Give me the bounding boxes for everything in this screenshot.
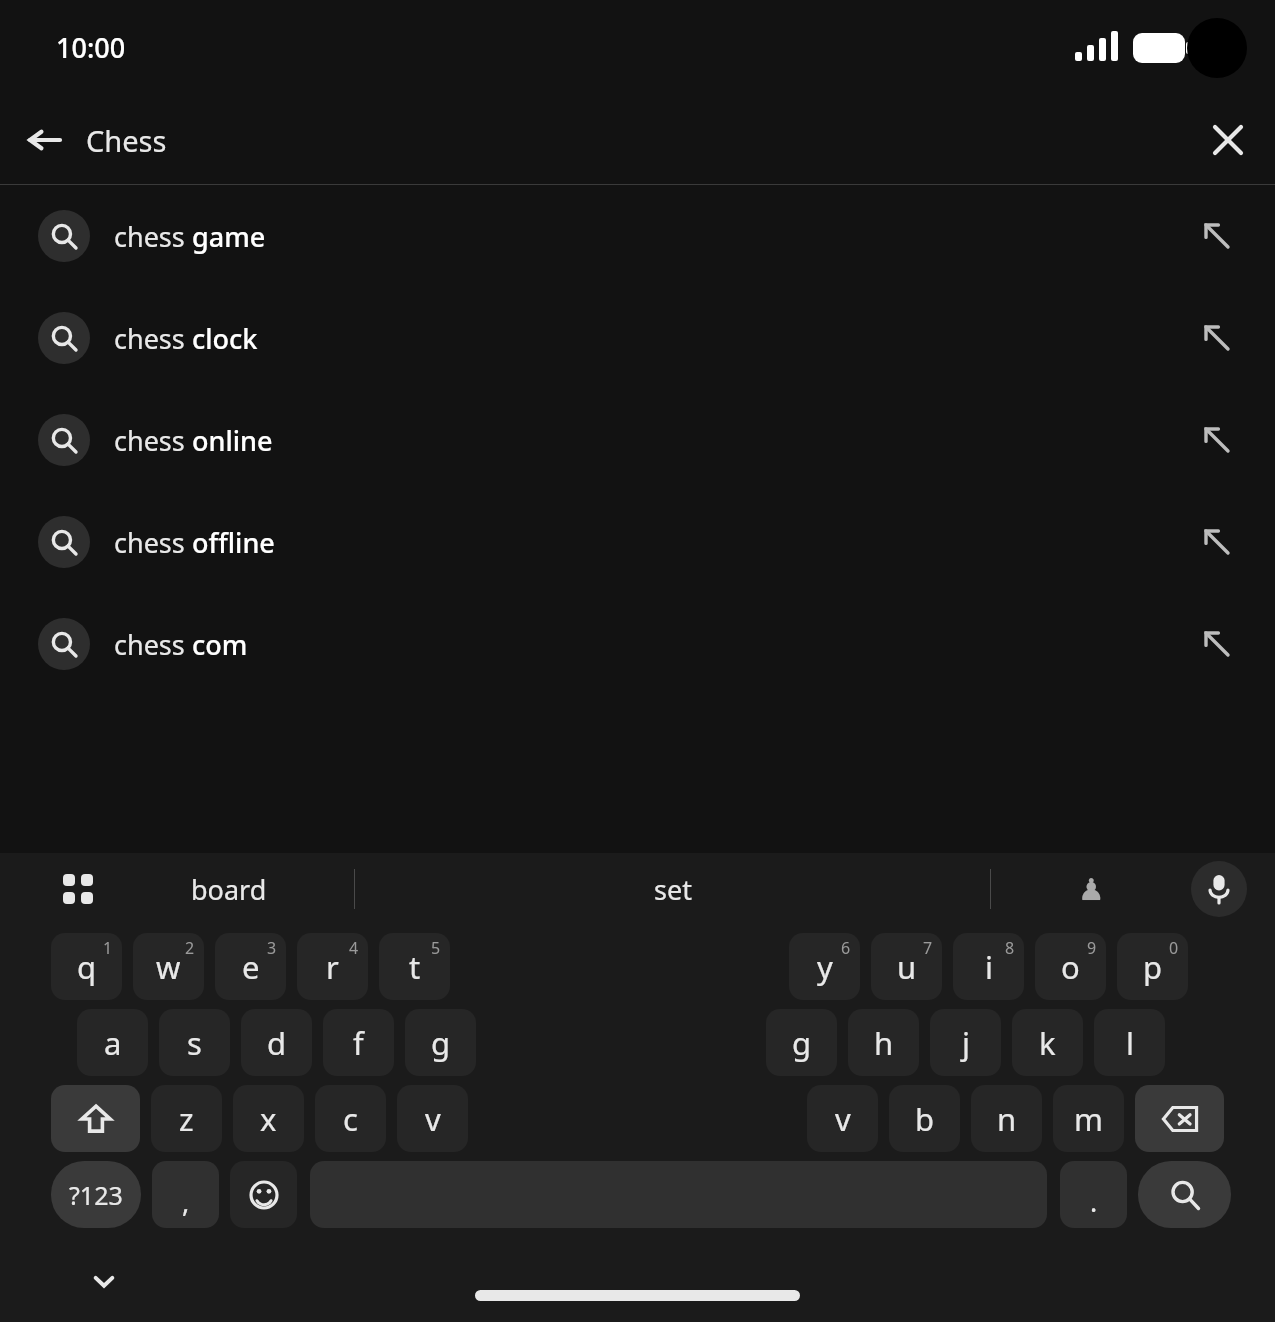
- staticText: o: [1061, 946, 1080, 988]
- button[interactable]: f: [323, 1009, 394, 1076]
- staticText: v: [425, 1098, 441, 1140]
- staticText: g: [431, 1022, 451, 1064]
- staticText: ♟: [1078, 872, 1105, 907]
- staticText: y: [817, 946, 833, 988]
- staticText: 0: [1169, 937, 1179, 959]
- staticText: c: [343, 1098, 358, 1140]
- staticText: s: [187, 1022, 202, 1064]
- button[interactable]: w: [133, 933, 204, 1000]
- staticText: g: [792, 1022, 812, 1064]
- button[interactable]: a: [77, 1009, 148, 1076]
- button[interactable]: Insert suggestion: [1191, 312, 1243, 364]
- staticText: f: [353, 1022, 364, 1064]
- staticText: p: [1143, 946, 1163, 988]
- staticText: online: [185, 422, 273, 459]
- staticText: h: [874, 1022, 894, 1064]
- button[interactable]: n: [971, 1085, 1042, 1152]
- staticText: chess: [114, 524, 185, 561]
- staticText: v: [835, 1098, 851, 1140]
- staticText: offline: [185, 524, 275, 561]
- button[interactable]: Hide keyboard: [76, 1253, 132, 1309]
- staticText: w: [156, 946, 181, 988]
- button[interactable]: u: [871, 933, 942, 1000]
- button[interactable]: Insert suggestion: [1191, 414, 1243, 466]
- staticText: r: [326, 946, 339, 988]
- button[interactable]: o: [1035, 933, 1106, 1000]
- button[interactable]: y: [789, 933, 860, 1000]
- staticText: i: [985, 946, 993, 988]
- button[interactable]: p: [1117, 933, 1188, 1000]
- staticText: 2: [185, 937, 195, 959]
- staticText: 5: [431, 937, 441, 959]
- staticText: k: [1039, 1022, 1056, 1064]
- staticText: com: [185, 626, 248, 663]
- staticText: 7: [923, 937, 933, 959]
- staticText: u: [897, 946, 917, 988]
- button[interactable]: Back: [14, 110, 74, 170]
- staticText: 8: [1005, 937, 1015, 959]
- button[interactable]: chess: [0, 185, 1275, 287]
- staticText: 3: [267, 937, 277, 959]
- staticText: 1: [103, 937, 113, 959]
- button[interactable]: chess: [0, 593, 1275, 695]
- button[interactable]: Insert suggestion: [1191, 210, 1243, 262]
- staticText: l: [1126, 1022, 1134, 1064]
- button[interactable]: Insert suggestion: [1191, 516, 1243, 568]
- button[interactable]: Comma: [152, 1161, 219, 1228]
- button[interactable]: q: [51, 933, 122, 1000]
- button[interactable]: r: [297, 933, 368, 1000]
- button[interactable]: e: [215, 933, 286, 1000]
- button[interactable]: v: [397, 1085, 468, 1152]
- button[interactable]: ♟: [991, 853, 1191, 925]
- button[interactable]: Toolbar: [52, 863, 104, 915]
- button[interactable]: Insert suggestion: [1191, 618, 1243, 670]
- staticText: ?123: [69, 1178, 123, 1212]
- staticText: n: [997, 1098, 1017, 1140]
- button[interactable]: Backspace: [1135, 1085, 1224, 1152]
- staticText: e: [242, 946, 260, 988]
- button[interactable]: b: [889, 1085, 960, 1152]
- button[interactable]: board: [104, 853, 354, 925]
- button[interactable]: g: [405, 1009, 476, 1076]
- button[interactable]: ?123: [51, 1161, 141, 1228]
- button[interactable]: Shift: [51, 1085, 140, 1152]
- staticText: a: [104, 1022, 122, 1064]
- button[interactable]: Emoji: [230, 1161, 297, 1228]
- button[interactable]: g: [766, 1009, 837, 1076]
- staticText: chess: [114, 218, 185, 255]
- button[interactable]: h: [848, 1009, 919, 1076]
- button[interactable]: s: [159, 1009, 230, 1076]
- button[interactable]: chess: [0, 287, 1275, 389]
- button[interactable]: j: [930, 1009, 1001, 1076]
- button[interactable]: m: [1053, 1085, 1124, 1152]
- staticText: x: [260, 1098, 277, 1140]
- staticText: z: [179, 1098, 194, 1140]
- button[interactable]: k: [1012, 1009, 1083, 1076]
- button[interactable]: i: [953, 933, 1024, 1000]
- button[interactable]: z: [151, 1085, 222, 1152]
- button[interactable]: Clear: [1197, 109, 1259, 171]
- button[interactable]: c: [315, 1085, 386, 1152]
- staticText: b: [915, 1098, 935, 1140]
- button[interactable]: set: [355, 853, 990, 925]
- staticText: t: [409, 946, 421, 988]
- button[interactable]: t: [379, 933, 450, 1000]
- staticText: game: [185, 218, 266, 255]
- staticText: d: [267, 1022, 287, 1064]
- button[interactable]: Period: [1060, 1161, 1127, 1228]
- button[interactable]: Search: [1138, 1161, 1231, 1228]
- staticText: chess: [114, 320, 185, 357]
- staticText: 6: [841, 937, 851, 959]
- button[interactable]: chess: [0, 389, 1275, 491]
- button[interactable]: d: [241, 1009, 312, 1076]
- staticText: chess: [114, 626, 185, 663]
- button[interactable]: l: [1094, 1009, 1165, 1076]
- button[interactable]: chess: [0, 491, 1275, 593]
- button[interactable]: Voice input: [1191, 861, 1247, 917]
- button[interactable]: v: [807, 1085, 878, 1152]
- staticText: m: [1074, 1098, 1103, 1140]
- staticText: q: [77, 946, 97, 988]
- button[interactable]: x: [233, 1085, 304, 1152]
- staticText: ,: [182, 1183, 190, 1220]
